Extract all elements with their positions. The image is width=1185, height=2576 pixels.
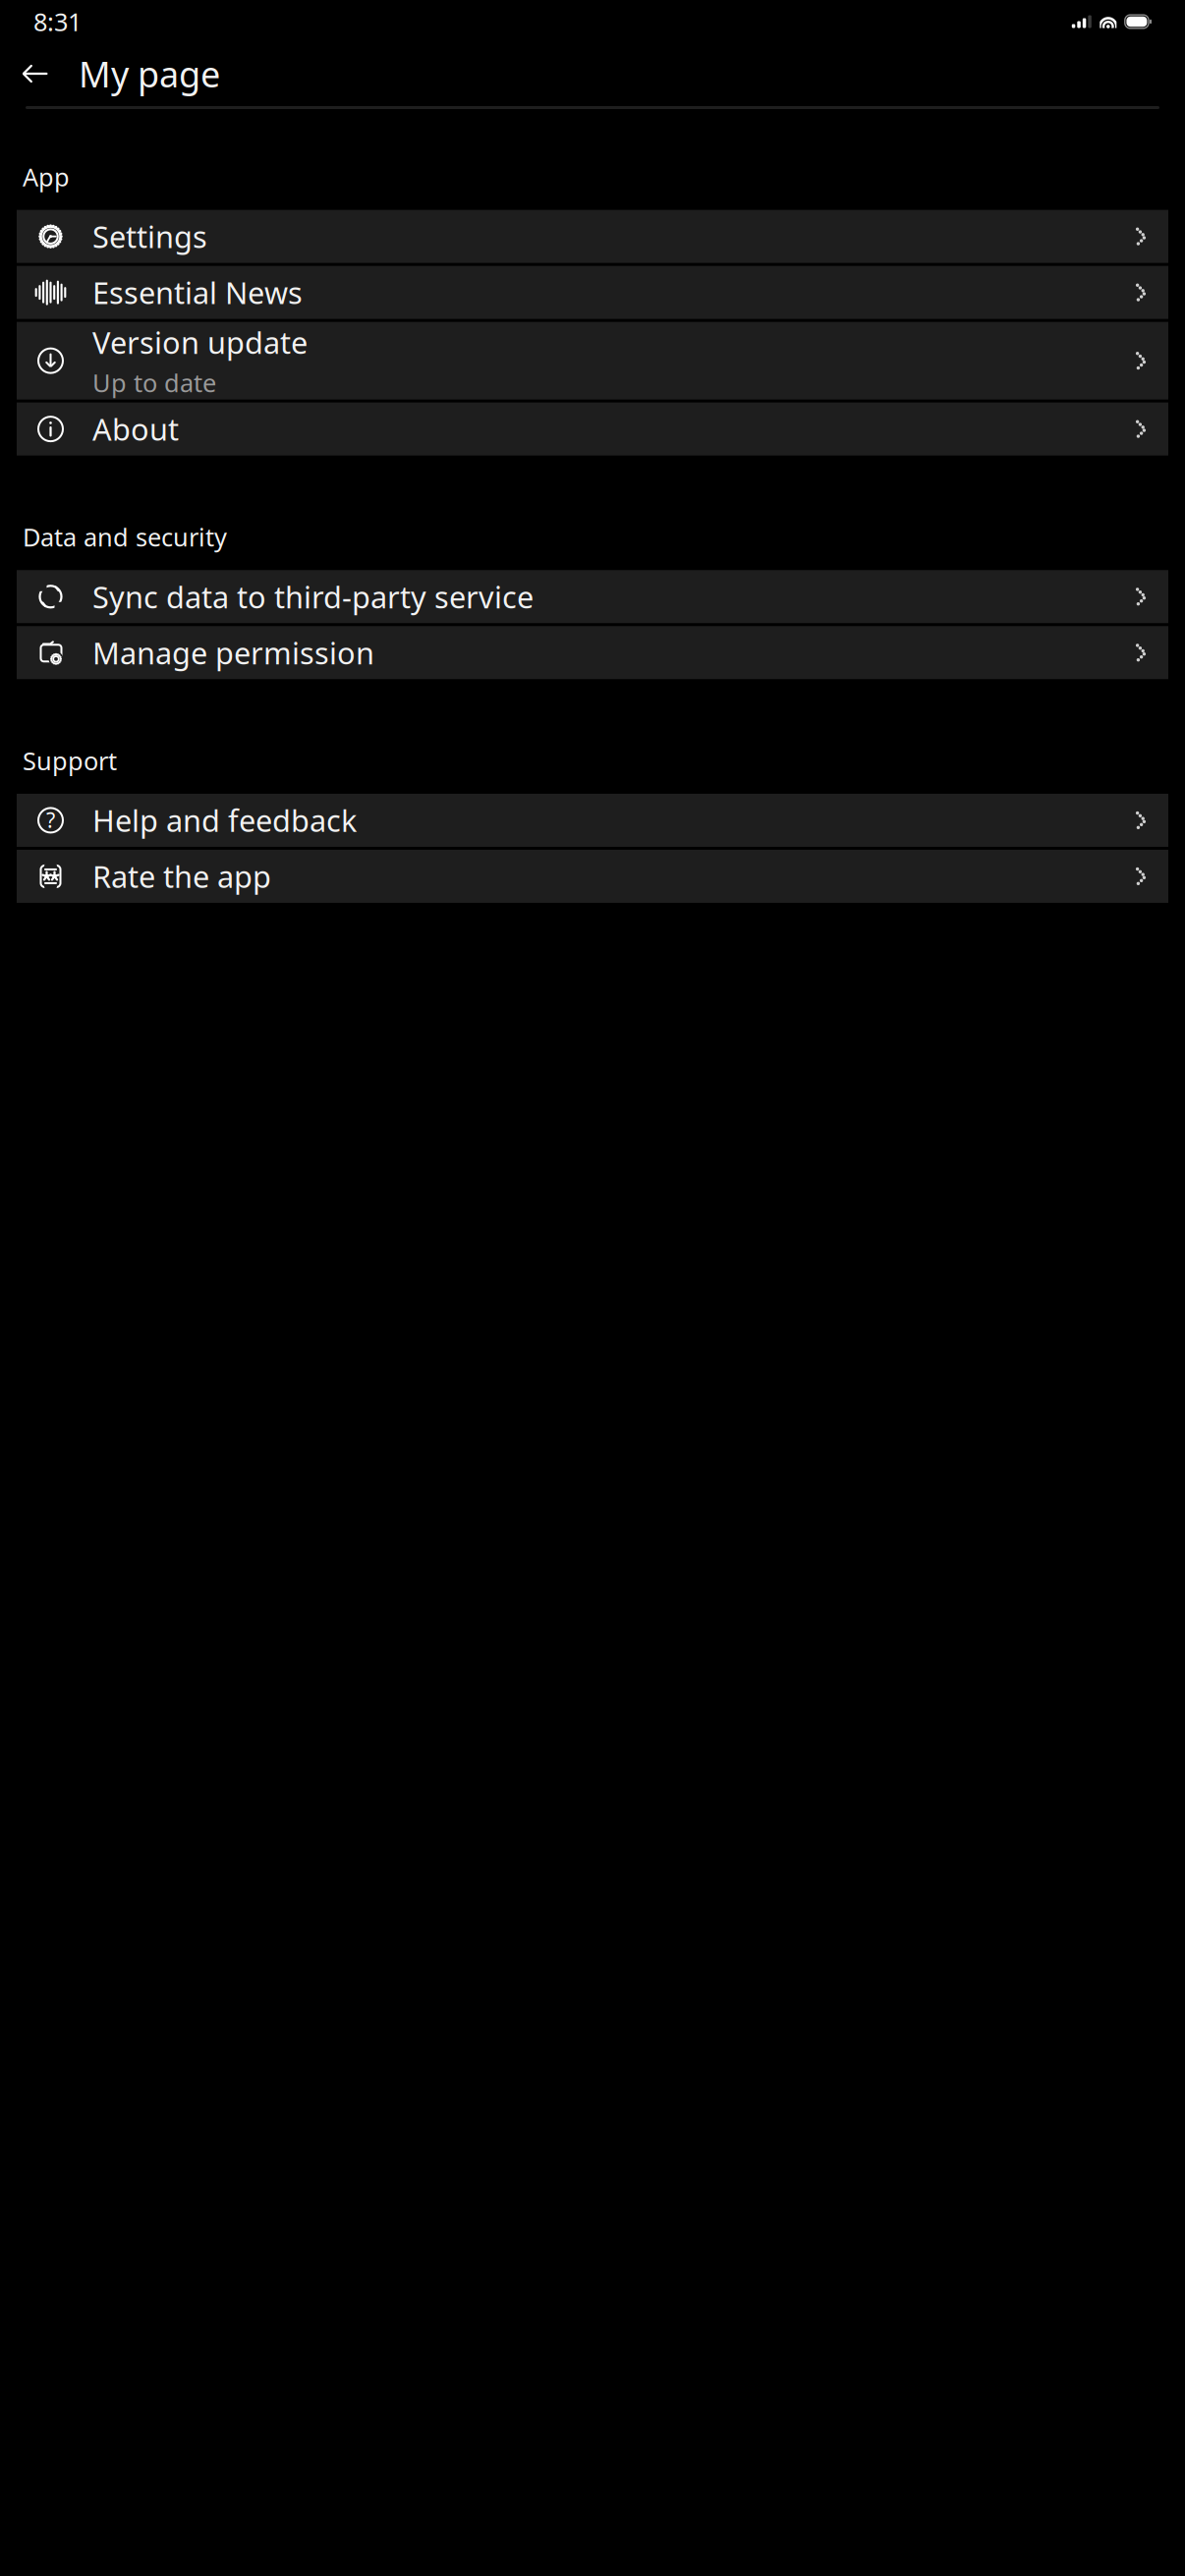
button[interactable]: Sync data to third-party service: [17, 570, 1168, 623]
staticText: Sync data to third-party service: [92, 577, 534, 617]
staticText: ?: [46, 806, 55, 834]
staticText: Up to date: [92, 366, 216, 399]
staticText: Settings: [92, 216, 207, 256]
staticText: About: [92, 409, 179, 449]
staticText: Manage permission: [92, 633, 374, 673]
staticText: Help and feedback: [92, 800, 357, 840]
button[interactable]: Rate the app: [17, 850, 1168, 903]
staticText: Rate the app: [92, 856, 271, 896]
button[interactable]: Manage permission: [17, 626, 1168, 679]
staticText: Version update: [92, 322, 308, 362]
staticText: Support: [23, 744, 117, 777]
staticText: Data and security: [23, 520, 227, 553]
button[interactable]: Essential News: [17, 266, 1168, 319]
staticText: Essential News: [92, 272, 303, 312]
button[interactable]: About: [17, 402, 1168, 455]
staticText: My page: [79, 50, 220, 97]
button[interactable]: Settings: [17, 210, 1168, 263]
button[interactable]: Version update: [17, 322, 1168, 399]
staticText: 8:31: [33, 5, 82, 38]
button[interactable]: Back: [14, 52, 57, 95]
button[interactable]: ?: [17, 794, 1168, 847]
staticText: App: [23, 160, 70, 193]
